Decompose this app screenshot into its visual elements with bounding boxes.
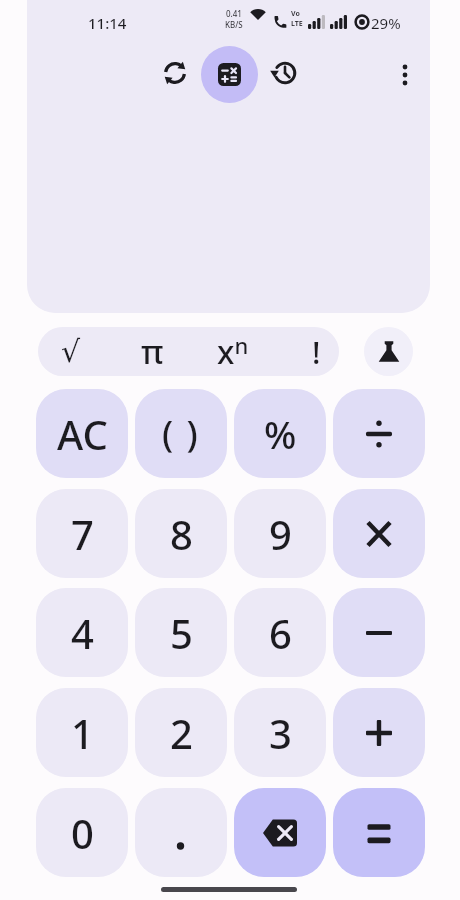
button[interactable] xyxy=(333,688,425,777)
button[interactable]: ( ) xyxy=(135,389,227,478)
button[interactable] xyxy=(385,55,425,95)
staticText: ! xyxy=(312,331,321,373)
button[interactable]: AC xyxy=(36,389,128,478)
staticText: xn xyxy=(217,330,249,374)
button[interactable] xyxy=(333,588,425,677)
button[interactable]: 1 xyxy=(36,688,128,777)
staticText: LTE xyxy=(291,19,303,29)
staticText: 3 xyxy=(269,706,292,760)
staticText: % xyxy=(264,408,297,460)
button[interactable] xyxy=(261,49,309,97)
staticText: AC xyxy=(57,407,108,461)
button[interactable]: 2 xyxy=(135,688,227,777)
button[interactable] xyxy=(135,788,227,877)
button[interactable] xyxy=(151,49,199,97)
staticText: Vo xyxy=(291,9,300,19)
button[interactable]: xn xyxy=(208,327,258,376)
staticText: ( ) xyxy=(162,409,200,458)
button[interactable]: 7 xyxy=(36,489,128,578)
staticText: 4 xyxy=(71,606,94,660)
staticText: √ xyxy=(61,334,81,369)
staticText: 5 xyxy=(170,606,193,660)
staticText: 7 xyxy=(71,507,94,561)
button[interactable]: 4 xyxy=(36,588,128,677)
staticText: 11:14 xyxy=(88,13,127,33)
staticText: 9 xyxy=(269,507,292,561)
staticText: 0 xyxy=(71,806,94,860)
button[interactable]: π xyxy=(129,327,175,376)
button[interactable] xyxy=(234,788,326,877)
button[interactable]: √ xyxy=(48,327,94,376)
button[interactable]: % xyxy=(234,389,326,478)
staticText: KB/S xyxy=(225,19,243,30)
button[interactable]: 9 xyxy=(234,489,326,578)
button[interactable] xyxy=(201,46,258,103)
staticText: 29% xyxy=(371,13,401,33)
button[interactable]: 3 xyxy=(234,688,326,777)
button[interactable] xyxy=(333,389,425,478)
button[interactable]: 0 xyxy=(36,788,128,877)
button[interactable] xyxy=(333,489,425,578)
staticText: 0.41 xyxy=(226,8,242,19)
button[interactable]: 8 xyxy=(135,489,227,578)
staticText: 1 xyxy=(71,706,94,760)
staticText: 8 xyxy=(170,507,193,561)
staticText: 2 xyxy=(170,706,193,760)
staticText: π xyxy=(141,329,164,374)
button[interactable] xyxy=(333,788,425,877)
button[interactable] xyxy=(364,327,413,376)
button[interactable]: 6 xyxy=(234,588,326,677)
button[interactable]: ! xyxy=(293,327,339,376)
staticText: 6 xyxy=(269,606,292,660)
button[interactable]: 5 xyxy=(135,588,227,677)
